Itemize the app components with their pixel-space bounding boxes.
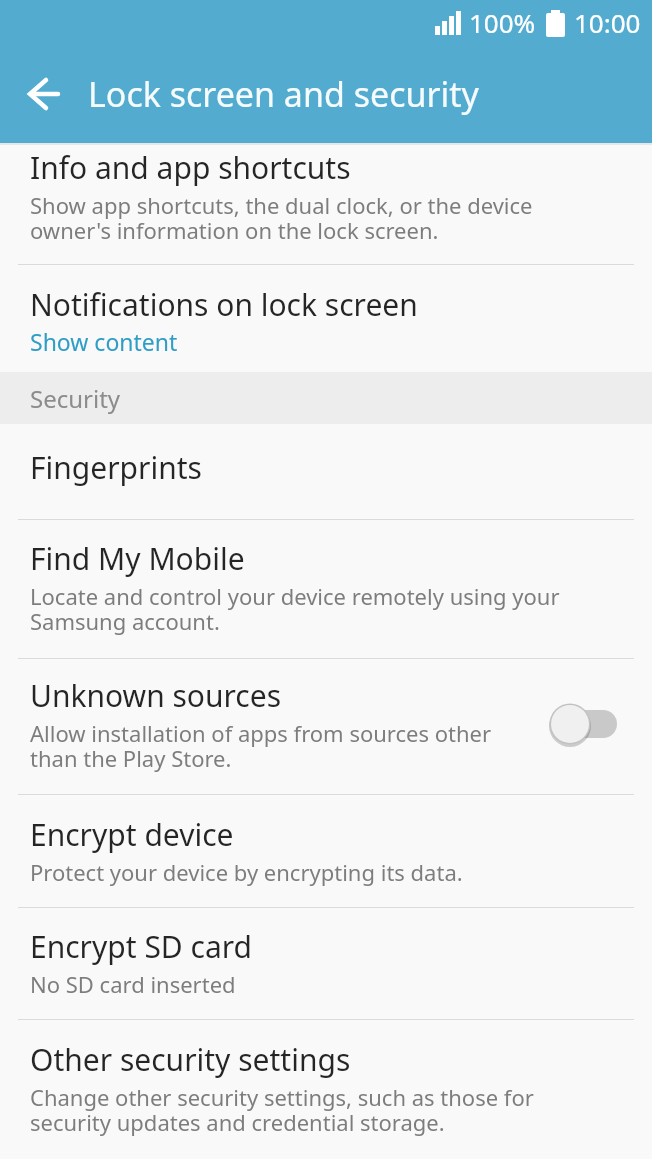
button[interactable]: Fingerprints	[0, 424, 652, 519]
staticText: Info and app shortcuts	[30, 147, 351, 188]
staticText: Unknown sources	[30, 675, 282, 716]
staticText: 10:00	[574, 5, 641, 40]
staticText: Encrypt SD card	[30, 926, 253, 967]
button[interactable]: Notifications on lock screen	[0, 265, 652, 372]
button[interactable]: Encrypt device	[0, 795, 652, 907]
button[interactable]: Find My Mobile	[0, 520, 652, 658]
staticText: Show app shortcuts, the dual clock, or t…	[30, 190, 533, 246]
button[interactable]: Info and app shortcuts	[0, 145, 652, 264]
staticText: Notifications on lock screen	[30, 284, 418, 325]
staticText: Show content	[30, 326, 178, 357]
button[interactable]: Encrypt SD card	[0, 908, 652, 1019]
staticText: Allow installation of apps from sources …	[30, 718, 492, 774]
staticText: Other security settings	[30, 1039, 351, 1080]
button[interactable]	[0, 45, 88, 143]
staticText: Fingerprints	[30, 447, 202, 488]
button[interactable]	[554, 703, 622, 747]
staticText: Find My Mobile	[30, 538, 245, 579]
staticText: Security	[30, 382, 121, 415]
staticText: Protect your device by encrypting its da…	[30, 857, 463, 887]
staticText: No SD card inserted	[30, 969, 236, 999]
staticText: 100%	[469, 5, 536, 40]
button[interactable]: Unknown sources	[0, 659, 652, 794]
button[interactable]: Other security settings	[0, 1020, 652, 1158]
staticText: Change other security settings, such as …	[30, 1082, 534, 1138]
staticText: Encrypt device	[30, 814, 234, 855]
staticText: Lock screen and security	[88, 71, 479, 117]
staticText: Locate and control your device remotely …	[30, 581, 560, 637]
